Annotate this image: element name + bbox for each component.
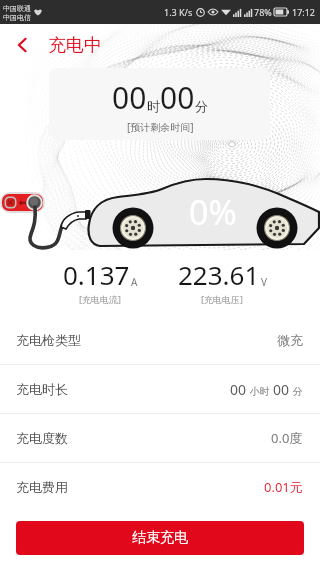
staticText: 中国联通 <box>3 4 31 13</box>
staticText: 1.3 K/s <box>164 6 193 18</box>
staticText: 微充 <box>277 332 303 348</box>
staticText: 分 <box>290 384 303 398</box>
staticText: 结束充电 <box>132 529 188 547</box>
staticText: 00 <box>273 380 290 399</box>
staticText: V <box>261 275 267 289</box>
staticText: 00 <box>112 77 147 118</box>
staticText: 223.61 <box>178 257 260 292</box>
staticText: [预计剩余时间] <box>127 120 194 134</box>
staticText: 0.0度 <box>271 429 303 447</box>
staticText: 充电时长 <box>16 381 68 397</box>
staticText: 时 <box>147 98 160 114</box>
staticText: 00 <box>160 77 195 118</box>
staticText: 分 <box>195 98 208 114</box>
staticText: 0.01元 <box>264 478 303 496</box>
button[interactable]: 充电度数 <box>0 414 320 463</box>
button[interactable]: Back <box>0 24 44 66</box>
staticText: 小时 <box>247 384 273 398</box>
staticText: 00 <box>230 380 247 399</box>
staticText: 充电度数 <box>16 430 68 446</box>
button[interactable]: 充电时长 <box>0 365 320 414</box>
staticText: [充电电压] <box>201 293 243 305</box>
staticText: 中国电信 <box>3 13 31 22</box>
staticText: 充电枪类型 <box>16 332 81 348</box>
staticText: 充电费用 <box>16 479 68 495</box>
staticText: [充电电流] <box>79 293 121 305</box>
button[interactable]: 充电枪类型 <box>0 316 320 365</box>
staticText: 78% <box>254 6 272 18</box>
button[interactable]: 结束充电 <box>16 521 304 555</box>
staticText: 0% <box>189 189 237 235</box>
staticText: 0.137 <box>63 257 130 292</box>
staticText: A <box>131 275 138 289</box>
button[interactable]: 充电费用 <box>0 463 320 511</box>
staticText: 17:12 <box>292 6 316 18</box>
staticText: 充电中 <box>48 34 102 57</box>
